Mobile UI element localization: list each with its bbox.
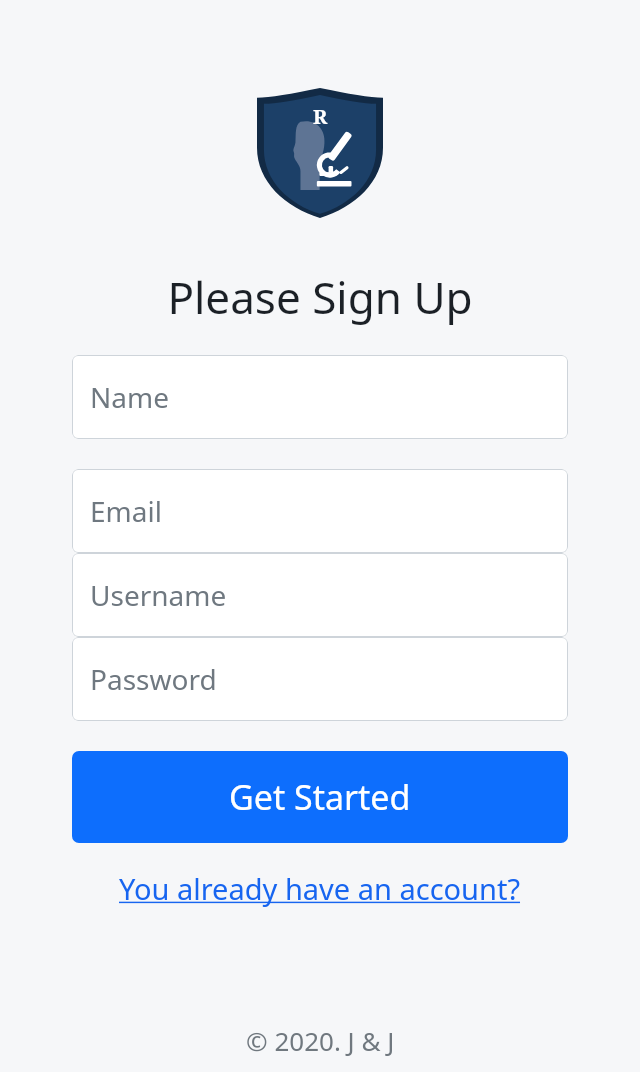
staticText: Email [90, 492, 162, 530]
staticText: Please Sign Up [167, 267, 473, 327]
button[interactable]: Email [72, 469, 568, 553]
other: App logo [257, 88, 383, 218]
staticText: Username [90, 576, 227, 614]
staticText: R [313, 103, 328, 130]
staticText: © 2020. J & J [246, 1023, 395, 1058]
staticText: You already have an account? [119, 869, 521, 908]
staticText: Get Started [229, 774, 411, 820]
button[interactable]: Get Started [72, 751, 568, 843]
button[interactable]: You already have an account? [111, 865, 529, 912]
staticText: Password [90, 660, 217, 698]
button[interactable]: Username [72, 553, 568, 637]
button[interactable]: Name [72, 355, 568, 439]
button[interactable]: Password [72, 637, 568, 721]
staticText: Name [90, 378, 169, 416]
